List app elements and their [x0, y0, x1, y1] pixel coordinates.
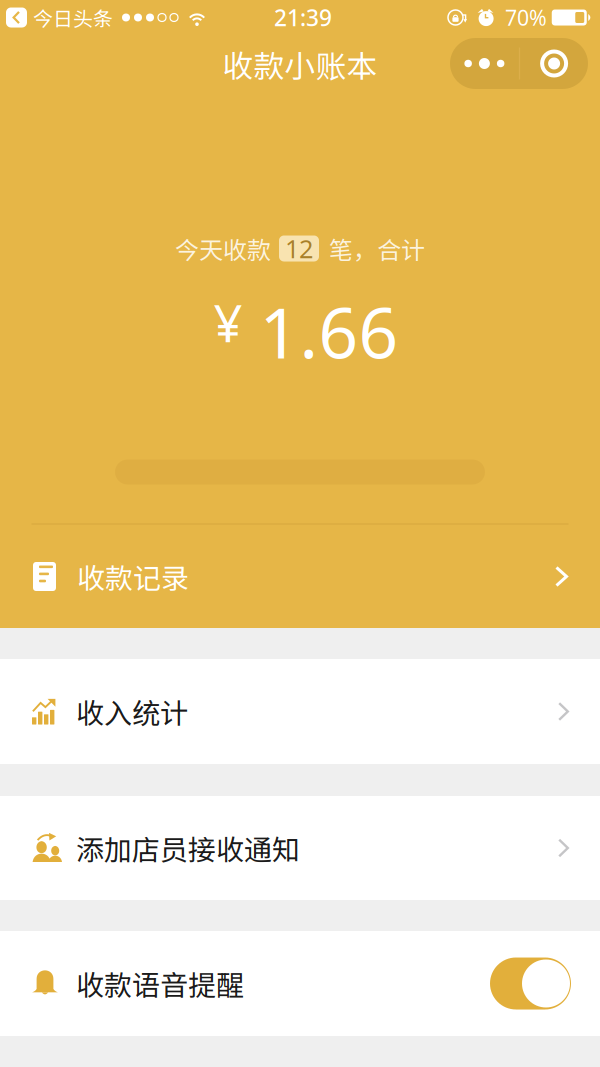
staticText: 笔，合计	[329, 231, 425, 266]
staticText: 收款记录	[77, 556, 189, 597]
staticText: 收入统计	[76, 691, 188, 732]
staticText: 收款语音提醒	[76, 963, 244, 1004]
staticText: 添加店员接收通知	[76, 828, 300, 868]
button[interactable]: 收款记录	[0, 524, 600, 628]
button[interactable]: More	[450, 38, 519, 89]
staticText: 1.66	[259, 285, 398, 378]
staticText: 今天收款	[175, 231, 271, 266]
button[interactable]: 收入统计	[0, 659, 600, 764]
staticText: 12	[285, 232, 313, 265]
staticText: ¥	[213, 289, 242, 356]
staticText: 21:39	[274, 2, 332, 32]
button[interactable]: Close mini program	[520, 38, 588, 89]
button[interactable]: 收款语音提醒	[0, 931, 600, 1036]
button[interactable]: 添加店员接收通知	[0, 796, 600, 900]
button[interactable]: Back to Toutiao	[6, 3, 113, 32]
staticText: 收款小账本	[222, 42, 377, 87]
staticText: 今日头条	[33, 3, 113, 32]
staticText: 70%	[505, 3, 547, 32]
